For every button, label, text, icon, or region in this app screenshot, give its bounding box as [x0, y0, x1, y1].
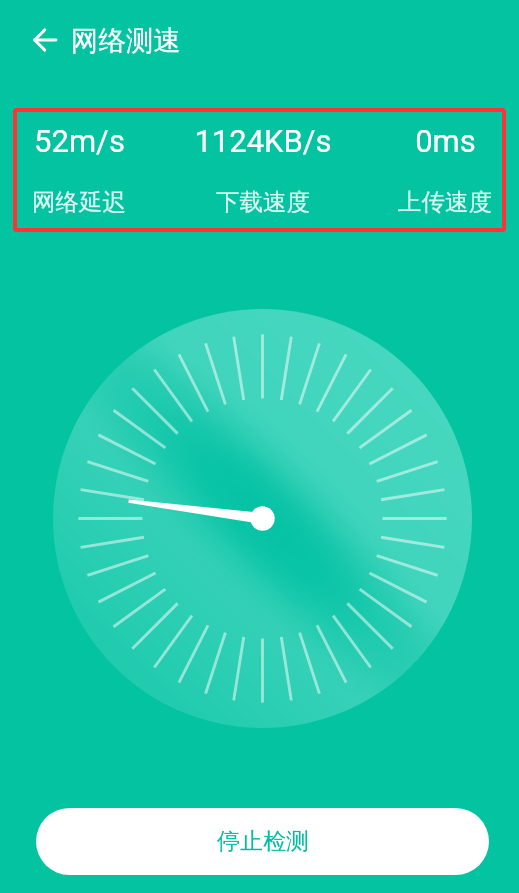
button[interactable]: 1124KB/s	[173, 123, 353, 227]
staticText: 1124KB/s	[194, 123, 332, 159]
button[interactable]: 停止检测	[36, 808, 489, 875]
staticText: 上传速度	[398, 187, 492, 217]
staticText: 52m/s	[34, 123, 125, 159]
staticText: 网络测速	[71, 24, 181, 59]
button[interactable]: 网络测速	[71, 21, 181, 61]
staticText: 停止检测	[217, 827, 309, 856]
staticText: 0ms	[415, 123, 476, 159]
staticText: 网络延迟	[32, 187, 126, 217]
button[interactable]: 0ms	[355, 123, 519, 227]
button[interactable]: 52m/s	[0, 123, 169, 227]
button[interactable]: Back	[23, 18, 67, 62]
staticText: 下载速度	[216, 187, 310, 217]
